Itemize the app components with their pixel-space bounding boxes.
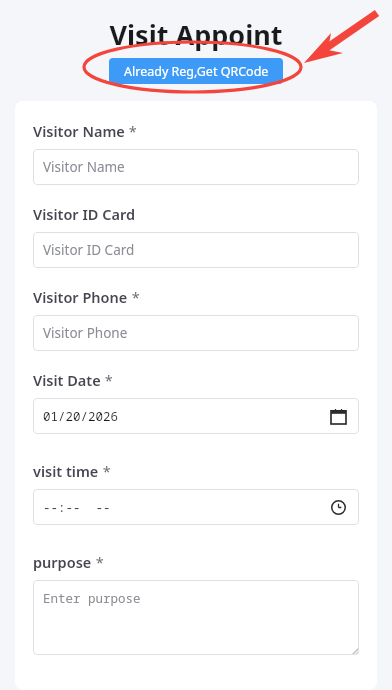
staticText: 01/20/2026 [43, 408, 119, 425]
staticText: purpose [33, 552, 92, 572]
staticText: Enter purpose [43, 590, 141, 607]
button[interactable]: Enter purpose [33, 580, 359, 655]
button[interactable]: --:-- -- [33, 489, 359, 525]
staticText: Already Reg,Get QRCode [124, 63, 269, 80]
button[interactable]: Pick time [327, 496, 349, 518]
staticText: * [125, 121, 137, 141]
staticText: Visitor Name [33, 121, 125, 141]
staticText: * [128, 287, 140, 307]
button[interactable]: Pick date [327, 405, 349, 427]
button[interactable]: Visitor Name [33, 149, 359, 185]
staticText: Visitor Name [43, 158, 125, 176]
staticText: Visitor Phone [33, 287, 128, 307]
button[interactable]: Visitor ID Card [33, 232, 359, 268]
staticText: Visit Appoint [109, 16, 283, 53]
staticText: visit time [33, 461, 99, 481]
staticText: * [92, 552, 104, 572]
staticText: * [101, 370, 113, 390]
staticText: Visitor Phone [43, 324, 128, 342]
button[interactable]: Visitor Phone [33, 315, 359, 351]
staticText: --:-- -- [43, 499, 111, 516]
staticText: Visitor ID Card [43, 241, 135, 259]
button[interactable]: Already Reg,Get QRCode [109, 58, 283, 84]
staticText: Visit Date [33, 370, 101, 390]
staticText: * [99, 461, 111, 481]
staticText: Visitor ID Card [33, 204, 135, 224]
button[interactable]: 01/20/2026 [33, 398, 359, 434]
